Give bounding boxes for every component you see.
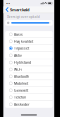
button[interactable]: Telefon — [5, 94, 53, 101]
button[interactable]: Høj kvalitet — [5, 38, 53, 45]
button[interactable]: Mobilnet — [5, 80, 53, 87]
staticText: Basis — [14, 32, 23, 37]
button[interactable]: Back — [6, 6, 9, 13]
button[interactable]: Aktiv — [5, 52, 53, 59]
button[interactable]: Basis — [5, 31, 53, 38]
button[interactable]: Bluetooth — [5, 73, 53, 80]
staticText: 9:41 — [6, 2, 10, 5]
staticText: Wi-Fi — [14, 67, 22, 72]
staticText: Mobilnet — [14, 81, 28, 86]
staticText: Høj kvalitet — [14, 39, 33, 44]
button[interactable]: Beskeder — [5, 101, 53, 108]
button[interactable]: Wi-Fi — [5, 66, 53, 73]
button[interactable]: Tilpasset — [5, 45, 53, 52]
staticText: Bluetooth — [14, 74, 29, 79]
staticText: Smartkald — [10, 7, 30, 12]
staticText: Generelt — [14, 88, 28, 93]
button[interactable]: Flytilstand — [5, 59, 53, 66]
staticText: Telefon — [14, 95, 26, 100]
staticText: Beskeder — [14, 102, 29, 107]
staticText: Aktiv — [14, 53, 22, 58]
staticText: Flytilstand — [14, 60, 31, 65]
button[interactable]: Generelt — [5, 87, 53, 94]
staticText: Tilpasset — [14, 46, 29, 51]
staticText: Oversigt over opkald — [7, 15, 40, 19]
